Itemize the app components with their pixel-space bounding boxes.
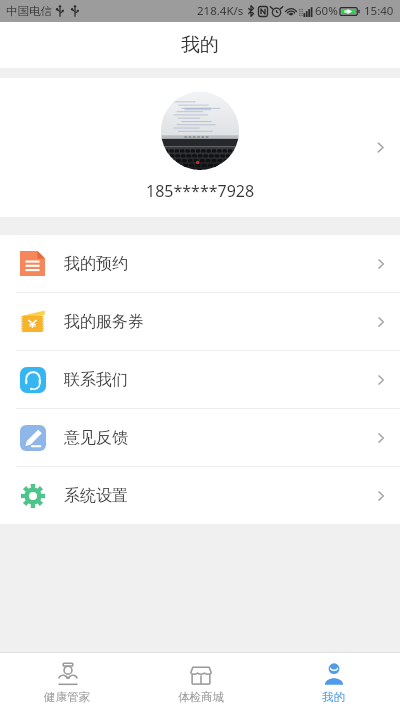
button[interactable]: 我的预约 bbox=[0, 235, 400, 292]
staticText: 意见反馈 bbox=[64, 428, 128, 448]
button[interactable]: 联系我们 bbox=[0, 351, 400, 408]
button[interactable]: 我的服务券 bbox=[0, 293, 400, 350]
button[interactable]: 185*****7928 bbox=[0, 78, 400, 217]
staticText: 我的服务券 bbox=[64, 312, 144, 332]
button[interactable]: 系统设置 bbox=[0, 467, 400, 524]
staticText: 我的 bbox=[181, 33, 219, 57]
button[interactable]: 意见反馈 bbox=[0, 409, 400, 466]
staticText: 体检商城 bbox=[178, 690, 224, 704]
button[interactable]: 体检商城 bbox=[134, 653, 267, 711]
button[interactable]: 健康管家 bbox=[0, 653, 134, 711]
button[interactable]: 我的 bbox=[267, 653, 400, 711]
staticText: 185*****7928 bbox=[146, 180, 255, 202]
staticText: 15:40 bbox=[364, 3, 394, 19]
staticText: 60% bbox=[315, 3, 338, 19]
staticText: 218.4K/s bbox=[197, 3, 244, 19]
staticText: 健康管家 bbox=[44, 690, 90, 704]
staticText: 我的 bbox=[322, 690, 345, 704]
staticText: 系统设置 bbox=[64, 486, 128, 506]
staticText: 我的预约 bbox=[64, 254, 128, 274]
staticText: 联系我们 bbox=[64, 370, 128, 390]
staticText: 中国电信 bbox=[6, 4, 52, 18]
